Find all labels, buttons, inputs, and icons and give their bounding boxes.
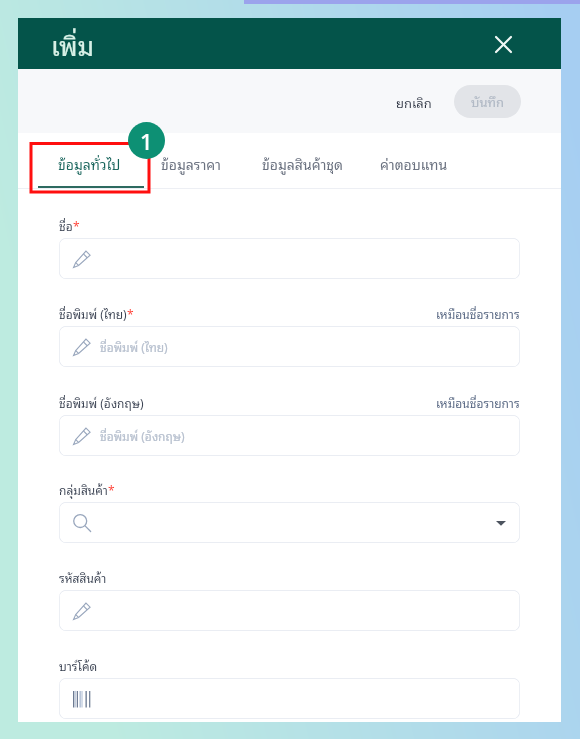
button[interactable]: ชื่อพิมพ์ (อังกฤษ) bbox=[59, 415, 520, 456]
button[interactable] bbox=[59, 238, 520, 279]
button[interactable]: ชื่อพิมพ์ (ไทย) bbox=[59, 326, 520, 367]
button[interactable]: ค่าตอบแทน bbox=[349, 133, 479, 189]
staticText: * bbox=[127, 306, 134, 322]
button[interactable]: ยกเลิก bbox=[389, 86, 439, 118]
button[interactable] bbox=[59, 590, 520, 631]
staticText: * bbox=[108, 482, 115, 498]
staticText: ชื่อพิมพ์ (ไทย) bbox=[59, 304, 127, 323]
button[interactable]: ข้อมูลสินค้าชุด bbox=[238, 133, 368, 189]
button[interactable] bbox=[59, 678, 520, 719]
staticText: ชื่อพิมพ์ (อังกฤษ) bbox=[59, 393, 144, 412]
button[interactable]: เหมือนชื่อรายการ bbox=[436, 393, 520, 412]
staticText: ยกเลิก bbox=[396, 92, 432, 113]
staticText: ข้อมูลราคา bbox=[161, 152, 222, 174]
staticText: ข้อมูลสินค้าชุด bbox=[262, 152, 344, 174]
staticText: 1 bbox=[140, 126, 153, 156]
staticText: บาร์โค้ด bbox=[59, 656, 98, 675]
button[interactable] bbox=[59, 502, 520, 543]
button[interactable]: ข้อมูลราคา bbox=[126, 133, 256, 189]
staticText: ชื่อ bbox=[59, 216, 73, 235]
staticText: ชื่อพิมพ์ (อังกฤษ) bbox=[100, 426, 185, 445]
button[interactable]: บันทึก bbox=[454, 85, 521, 118]
staticText: เพิ่ม bbox=[51, 23, 95, 65]
staticText: ข้อมูลทั่วไป bbox=[58, 152, 121, 174]
staticText: เหมือนชื่อรายการ bbox=[436, 304, 520, 323]
staticText: ชื่อพิมพ์ (ไทย) bbox=[100, 337, 168, 356]
staticText: ค่าตอบแทน bbox=[380, 152, 448, 174]
staticText: เหมือนชื่อรายการ bbox=[436, 393, 520, 412]
button[interactable]: ข้อมูลทั่วไป bbox=[24, 133, 154, 189]
staticText: รหัสสินค้า bbox=[59, 568, 107, 587]
staticText: * bbox=[73, 218, 80, 234]
staticText: บันทึก bbox=[471, 91, 505, 112]
button[interactable]: Close bbox=[488, 29, 518, 59]
button[interactable]: เหมือนชื่อรายการ bbox=[436, 304, 520, 323]
staticText: กลุ่มสินค้า bbox=[59, 480, 108, 499]
